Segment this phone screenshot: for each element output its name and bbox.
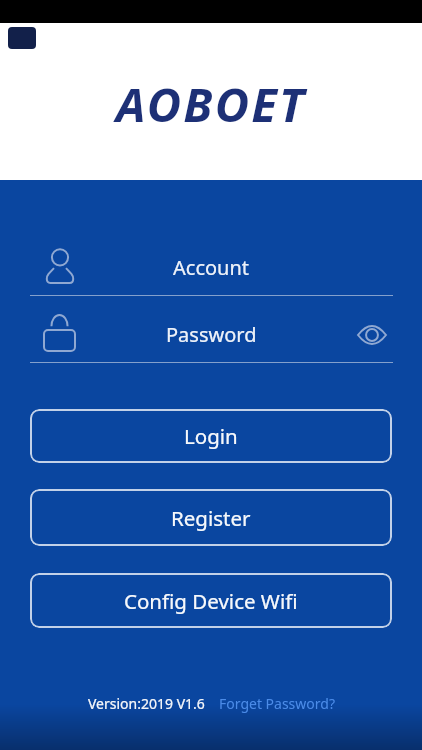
staticText: AOBOET xyxy=(116,72,307,136)
button[interactable]: Password xyxy=(30,307,393,362)
staticText: Config Device Wifi xyxy=(124,587,298,615)
button[interactable]: Login xyxy=(30,409,392,463)
staticText: Account xyxy=(173,254,250,281)
button[interactable]: Forget Password? xyxy=(219,694,335,713)
button[interactable]: Config Device Wifi xyxy=(30,573,392,628)
staticText: Register xyxy=(171,504,251,532)
button[interactable]: Register xyxy=(30,489,392,546)
button[interactable] xyxy=(358,324,386,346)
staticText: Password xyxy=(166,321,257,348)
button[interactable]: Account xyxy=(30,240,393,296)
staticText: Login xyxy=(184,422,238,450)
staticText: Version:2019 V1.6 xyxy=(88,694,205,713)
